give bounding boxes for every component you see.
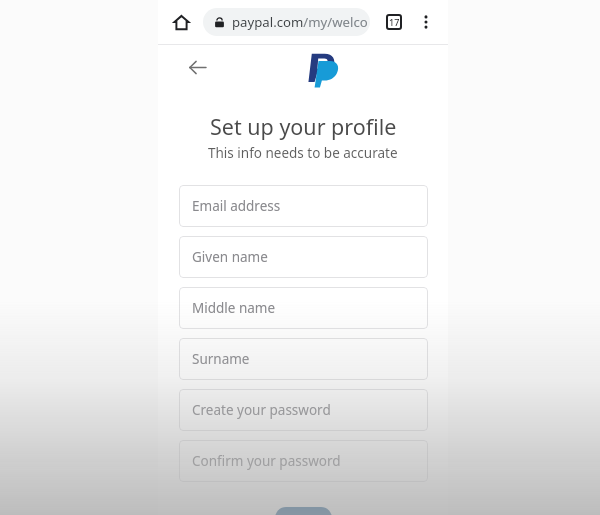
button[interactable]: Create your password [179, 389, 428, 431]
button[interactable]: Middle name [179, 287, 428, 329]
button[interactable]: Open tabs: 17 [381, 9, 407, 35]
staticText: This info needs to be accurate [208, 144, 398, 162]
button[interactable]: Continue [275, 507, 332, 515]
staticText: 17 [389, 16, 400, 28]
staticText: Confirm your password [192, 452, 341, 470]
staticText: Surname [192, 350, 250, 368]
button[interactable]: Back [184, 54, 210, 80]
button[interactable]: Email address [179, 185, 428, 227]
staticText: Create your password [192, 401, 331, 419]
staticText: Set up your profile [210, 112, 397, 141]
button[interactable]: Given name [179, 236, 428, 278]
button[interactable]: Confirm your password [179, 440, 428, 482]
button[interactable]: More options [413, 9, 439, 35]
button[interactable]: Surname [179, 338, 428, 380]
staticText: paypal.com/my/welco [232, 13, 368, 31]
staticText: Given name [192, 248, 268, 266]
staticText: Middle name [192, 299, 276, 317]
button[interactable]: Home [167, 8, 196, 37]
button[interactable]: paypal.com/my/welco [203, 8, 370, 36]
staticText: Email address [192, 197, 281, 215]
